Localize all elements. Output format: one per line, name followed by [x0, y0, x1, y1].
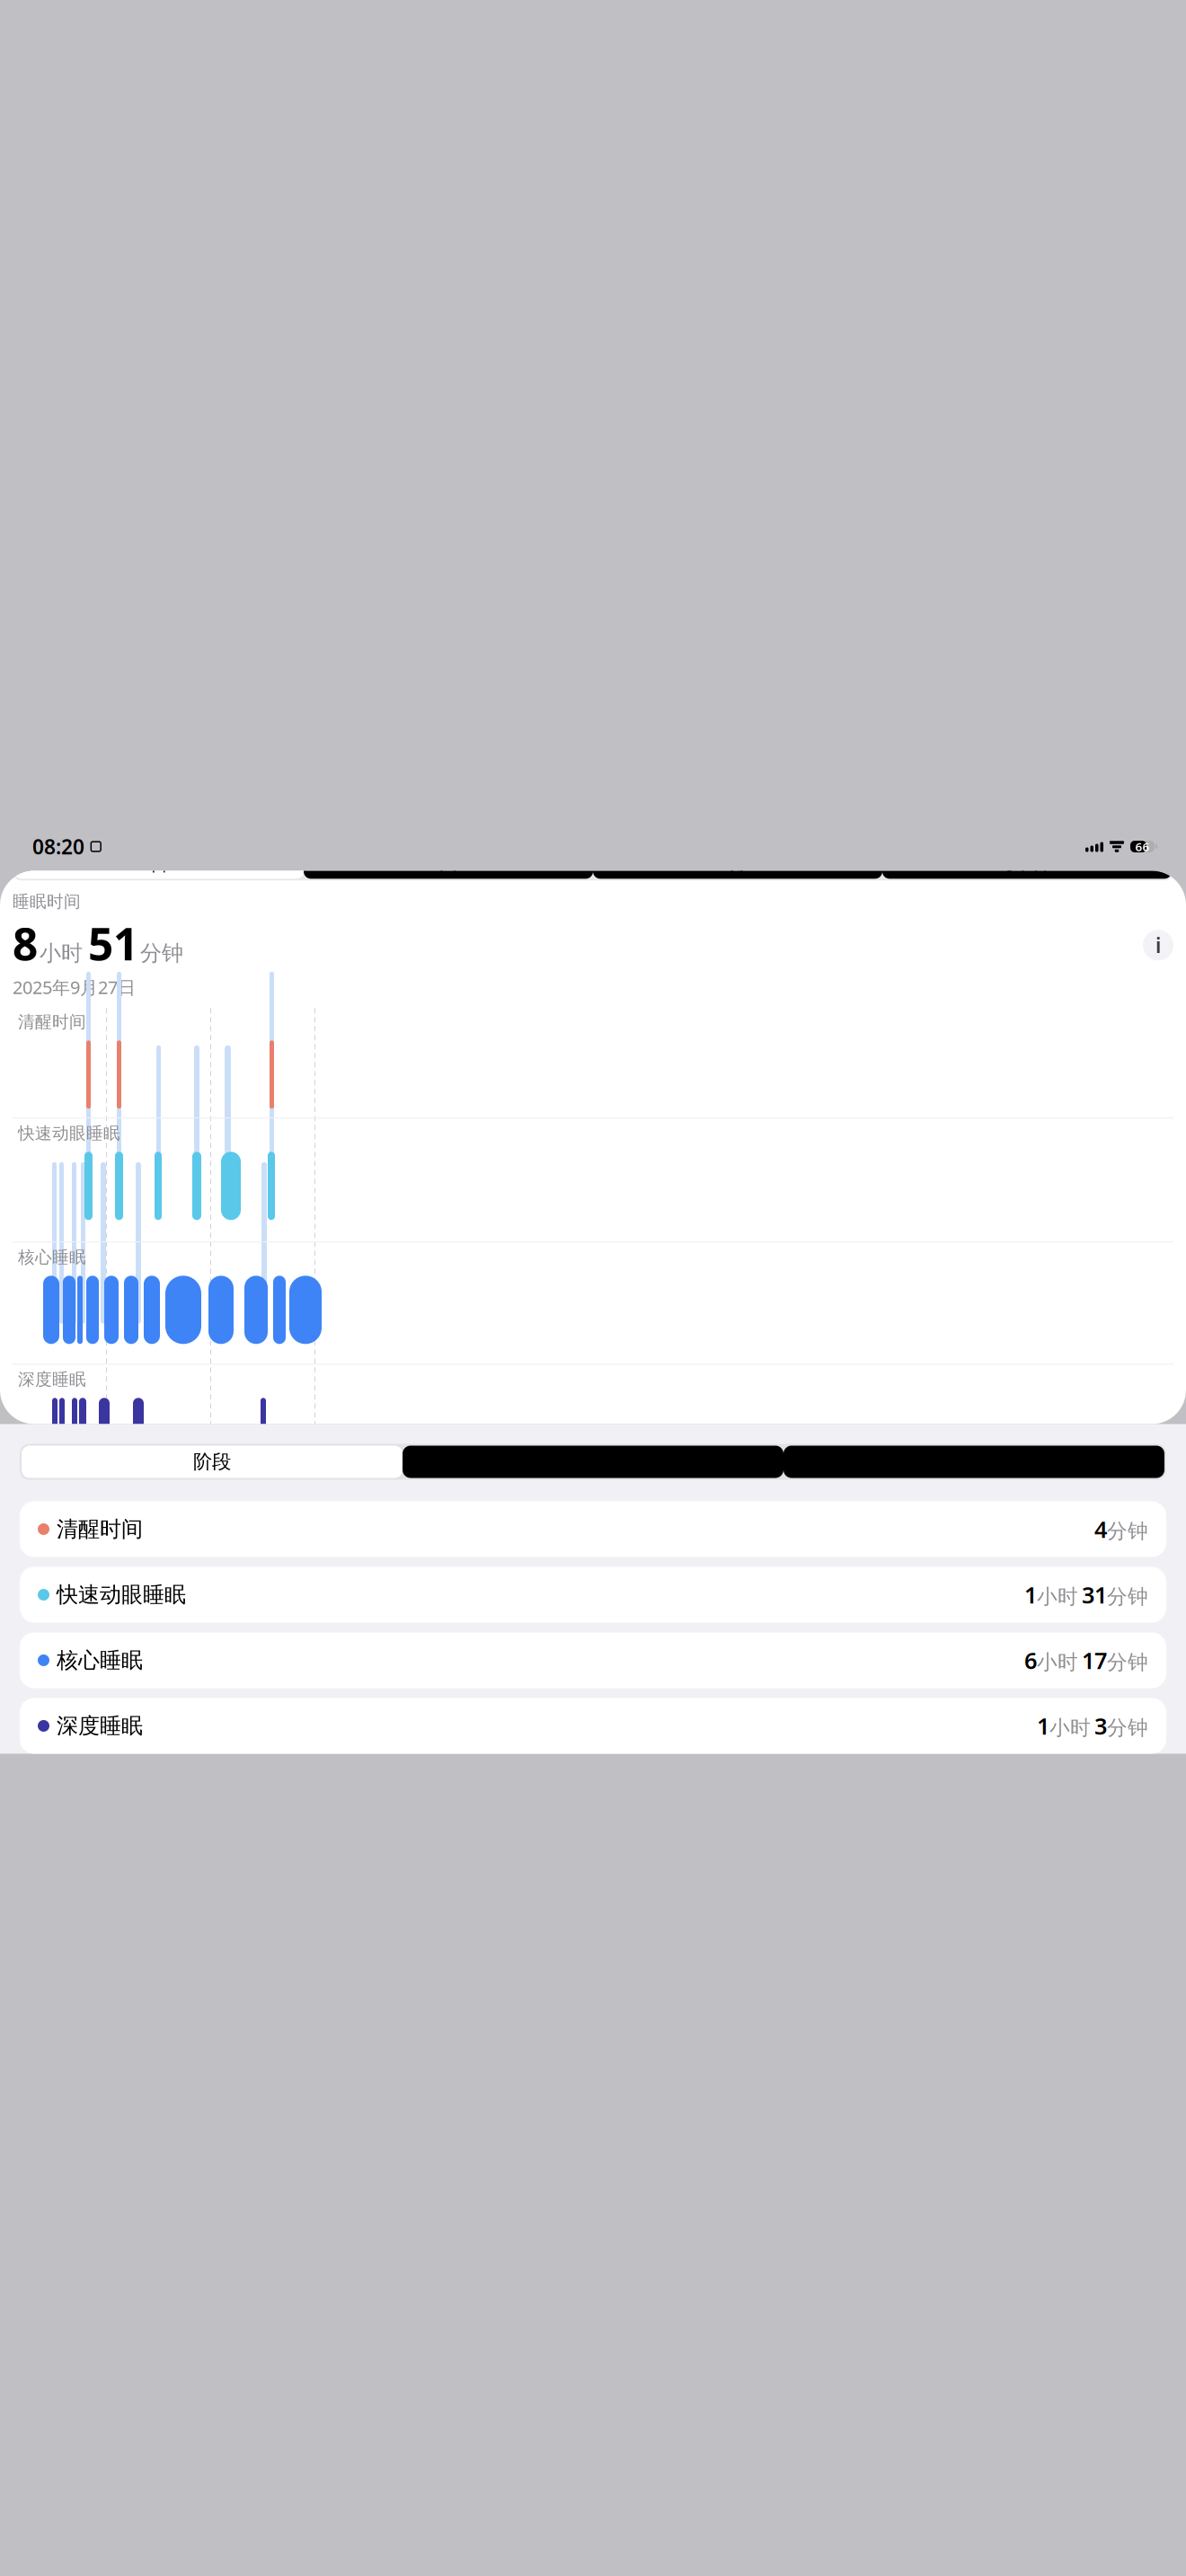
- button[interactable]: 阶段: [22, 1446, 403, 1478]
- staticText: 分钟: [140, 940, 183, 966]
- button[interactable]: 比较: [783, 1446, 1164, 1478]
- staticText: 小时: [1037, 1584, 1078, 1609]
- staticText: 分钟: [1107, 1519, 1148, 1544]
- staticText: 月: [729, 853, 747, 875]
- staticText: 深度睡眠: [18, 1369, 86, 1390]
- staticText: 6: [1024, 1645, 1037, 1675]
- staticText: 2025年9月27日: [13, 975, 136, 999]
- staticText: 1: [1024, 1580, 1037, 1610]
- button[interactable]: 周: [304, 850, 593, 879]
- staticText: 6个月: [1004, 852, 1050, 876]
- staticText: 周: [439, 853, 457, 875]
- staticText: 01:00: [111, 1487, 155, 1511]
- staticText: 小时: [1049, 1715, 1091, 1740]
- staticText: 清醒时间: [57, 1516, 143, 1542]
- button[interactable]: 6个月: [882, 850, 1172, 879]
- staticText: 睡眠时间: [13, 891, 81, 912]
- button[interactable]: 信息: [1143, 930, 1173, 960]
- staticText: 1: [1037, 1711, 1049, 1741]
- staticText: 小时: [40, 940, 83, 966]
- staticText: 分钟: [1107, 1584, 1148, 1609]
- staticText: 小时: [1037, 1650, 1078, 1675]
- staticText: i: [1155, 932, 1161, 959]
- staticText: 快速动眼睡眠: [57, 1582, 186, 1608]
- staticText: 31: [1082, 1580, 1107, 1610]
- staticText: 日: [150, 853, 168, 875]
- staticText: 核心睡眠: [57, 1647, 143, 1674]
- button[interactable]: 核心睡眠: [20, 1632, 1166, 1688]
- staticText: 07:00: [303, 1487, 347, 1511]
- staticText: 快速动眼睡眠: [18, 1123, 120, 1144]
- staticText: 22:00: [16, 1487, 60, 1511]
- button[interactable]: 深度睡眠: [20, 1698, 1166, 1754]
- staticText: 分钟: [1107, 1650, 1148, 1675]
- staticText: 17: [1082, 1645, 1107, 1675]
- staticText: 清醒时间: [18, 1012, 86, 1032]
- staticText: 核心睡眠: [18, 1247, 86, 1268]
- staticText: 08:20: [32, 833, 84, 860]
- staticText: 3: [1094, 1711, 1107, 1741]
- staticText: 66: [1135, 839, 1150, 854]
- staticText: 阶段: [193, 1450, 231, 1474]
- button[interactable]: 月: [593, 850, 882, 879]
- button[interactable]: 清醒时间: [20, 1501, 1166, 1557]
- staticText: 51: [88, 914, 138, 972]
- button[interactable]: 总量: [403, 1446, 783, 1478]
- button[interactable]: 快速动眼睡眠: [20, 1567, 1166, 1623]
- staticText: 4: [1094, 1514, 1107, 1544]
- staticText: 8: [13, 914, 38, 972]
- staticText: 深度睡眠: [57, 1713, 143, 1739]
- staticText: 04:00: [207, 1487, 251, 1511]
- staticText: 分钟: [1107, 1715, 1148, 1740]
- button[interactable]: 日: [14, 850, 304, 879]
